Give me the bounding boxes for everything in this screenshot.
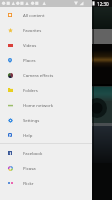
staticText: ? [9, 133, 11, 137]
button[interactable]: Flickr [0, 175, 92, 190]
button[interactable]: Home network [0, 97, 92, 112]
staticText: Picasa [23, 165, 36, 171]
button[interactable]: Facebook [0, 145, 92, 160]
staticText: Videos [23, 42, 37, 48]
button[interactable]: Videos [0, 37, 92, 52]
staticText: Home network [23, 102, 54, 108]
button[interactable]: Places [0, 52, 92, 67]
button[interactable]: All content [0, 7, 92, 22]
staticText: Facebook [23, 150, 43, 156]
staticText: Folders [23, 87, 38, 93]
staticText: Flickr [23, 180, 34, 186]
button[interactable]: Picasa [0, 160, 92, 175]
staticText: Favorites [23, 27, 42, 33]
staticText: All content [23, 12, 45, 18]
staticText: Help [23, 132, 33, 138]
button[interactable]: Settings [0, 112, 92, 127]
button[interactable]: Favorites [0, 22, 92, 37]
staticText: 12:30 [97, 1, 109, 7]
button[interactable]: ? [0, 127, 92, 142]
staticText: Settings [23, 117, 40, 123]
button[interactable]: Camera effects [0, 67, 92, 82]
button[interactable]: Folders [0, 82, 92, 97]
staticText: Camera effects [23, 72, 54, 78]
staticText: Places [23, 57, 36, 63]
